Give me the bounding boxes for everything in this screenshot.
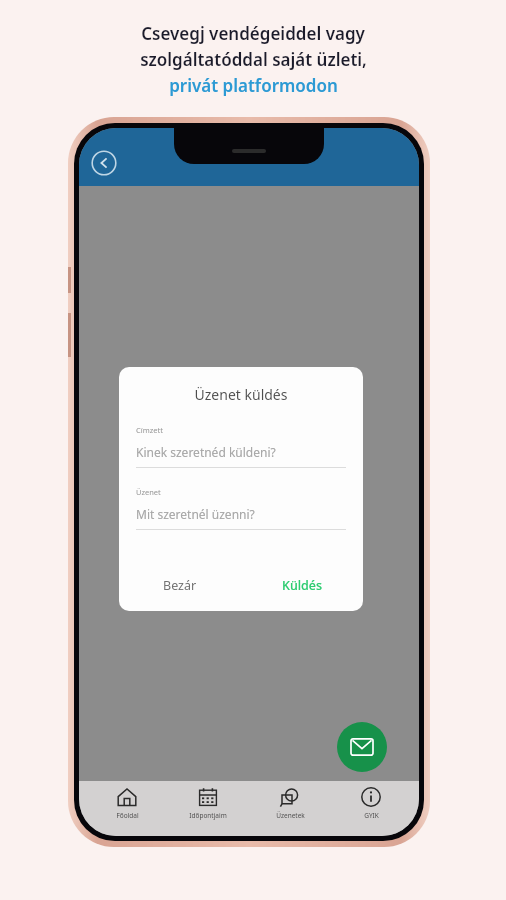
staticText: Címzett (136, 425, 163, 435)
staticText: Üzenetek (276, 811, 305, 820)
staticText: Főoldal (116, 811, 139, 820)
button[interactable]: Üzenetek (256, 787, 324, 836)
staticText: Bezár (163, 577, 197, 594)
button[interactable]: Bezár (119, 559, 241, 611)
staticText: Mit szeretnél üzenni? (136, 506, 255, 522)
staticText: Kinek szeretnéd küldeni? (136, 444, 276, 460)
staticText: Csevegj vendégeiddel vagy (141, 22, 365, 45)
staticText: szolgáltatóddal saját üzleti, (140, 48, 367, 71)
button[interactable]: GYIK (337, 787, 405, 836)
button[interactable]: Küldés (241, 559, 363, 611)
button[interactable]: Főoldal (93, 787, 161, 836)
button[interactable]: New message (337, 722, 387, 772)
staticText: Üzenet küldés (119, 385, 363, 404)
staticText: Időpontjaim (189, 811, 227, 820)
staticText: privát platformodon (169, 74, 338, 97)
staticText: GYIK (364, 811, 379, 820)
staticText: Üzenet (136, 487, 161, 497)
button[interactable]: Back (91, 150, 117, 176)
button[interactable]: Időpontjaim (174, 787, 242, 836)
staticText: Küldés (282, 577, 323, 594)
